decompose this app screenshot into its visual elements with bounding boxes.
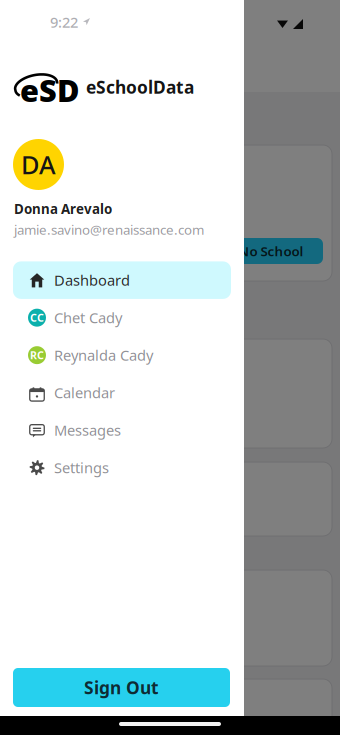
staticText: CC (30, 311, 44, 325)
staticText: Messages (54, 420, 121, 440)
staticText: Absences (YTD) (22, 389, 131, 408)
staticText: 9:22 (50, 12, 78, 32)
staticText: Reynalda Cady (54, 345, 153, 365)
staticText: Donna Arevalo (14, 200, 112, 218)
staticText: DA (21, 148, 56, 181)
staticText: Calendar (54, 383, 115, 402)
staticText: Sign Out (84, 676, 159, 699)
button[interactable]: Messages (13, 411, 231, 449)
button[interactable]: Settings (13, 449, 231, 486)
button[interactable]: Dashboard (13, 261, 231, 299)
button[interactable]: Calendar (13, 374, 231, 411)
staticText: eSchoolData (86, 75, 194, 98)
button[interactable]: Sign Out (13, 668, 230, 707)
button[interactable]: CC (13, 299, 231, 336)
staticText: eSD (20, 70, 80, 110)
staticText: No School (238, 242, 303, 260)
staticText: Dashboard (54, 270, 130, 290)
staticText: jamie.savino@renaissance.com (14, 221, 204, 238)
staticText: Nurse Daily Callback (22, 475, 172, 494)
staticText: RC (30, 348, 44, 362)
staticText: Chet Cady (CC) (22, 690, 126, 709)
staticText: Settings (54, 458, 109, 477)
staticText: Chet Cady (54, 308, 122, 327)
button[interactable]: RC (13, 336, 231, 374)
